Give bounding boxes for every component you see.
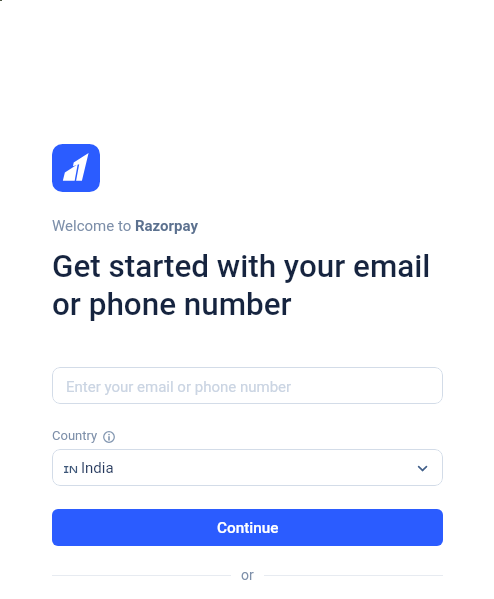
staticText: Welcome to Razorpay xyxy=(52,217,198,235)
other: Select country xyxy=(415,461,429,475)
staticText: Get started with your email or phone num… xyxy=(52,248,444,322)
staticText: Enter your email or phone number xyxy=(66,378,292,396)
button[interactable]: Continue xyxy=(52,509,443,546)
other: Razorpay logo xyxy=(52,144,100,192)
staticText: India xyxy=(81,459,114,477)
staticText: Continue xyxy=(217,519,279,537)
button[interactable]: India xyxy=(52,449,443,486)
button[interactable]: Enter your email or phone number xyxy=(52,367,443,404)
other: Country information xyxy=(103,431,115,443)
staticText: Country xyxy=(52,428,98,443)
staticText: or xyxy=(241,567,254,583)
